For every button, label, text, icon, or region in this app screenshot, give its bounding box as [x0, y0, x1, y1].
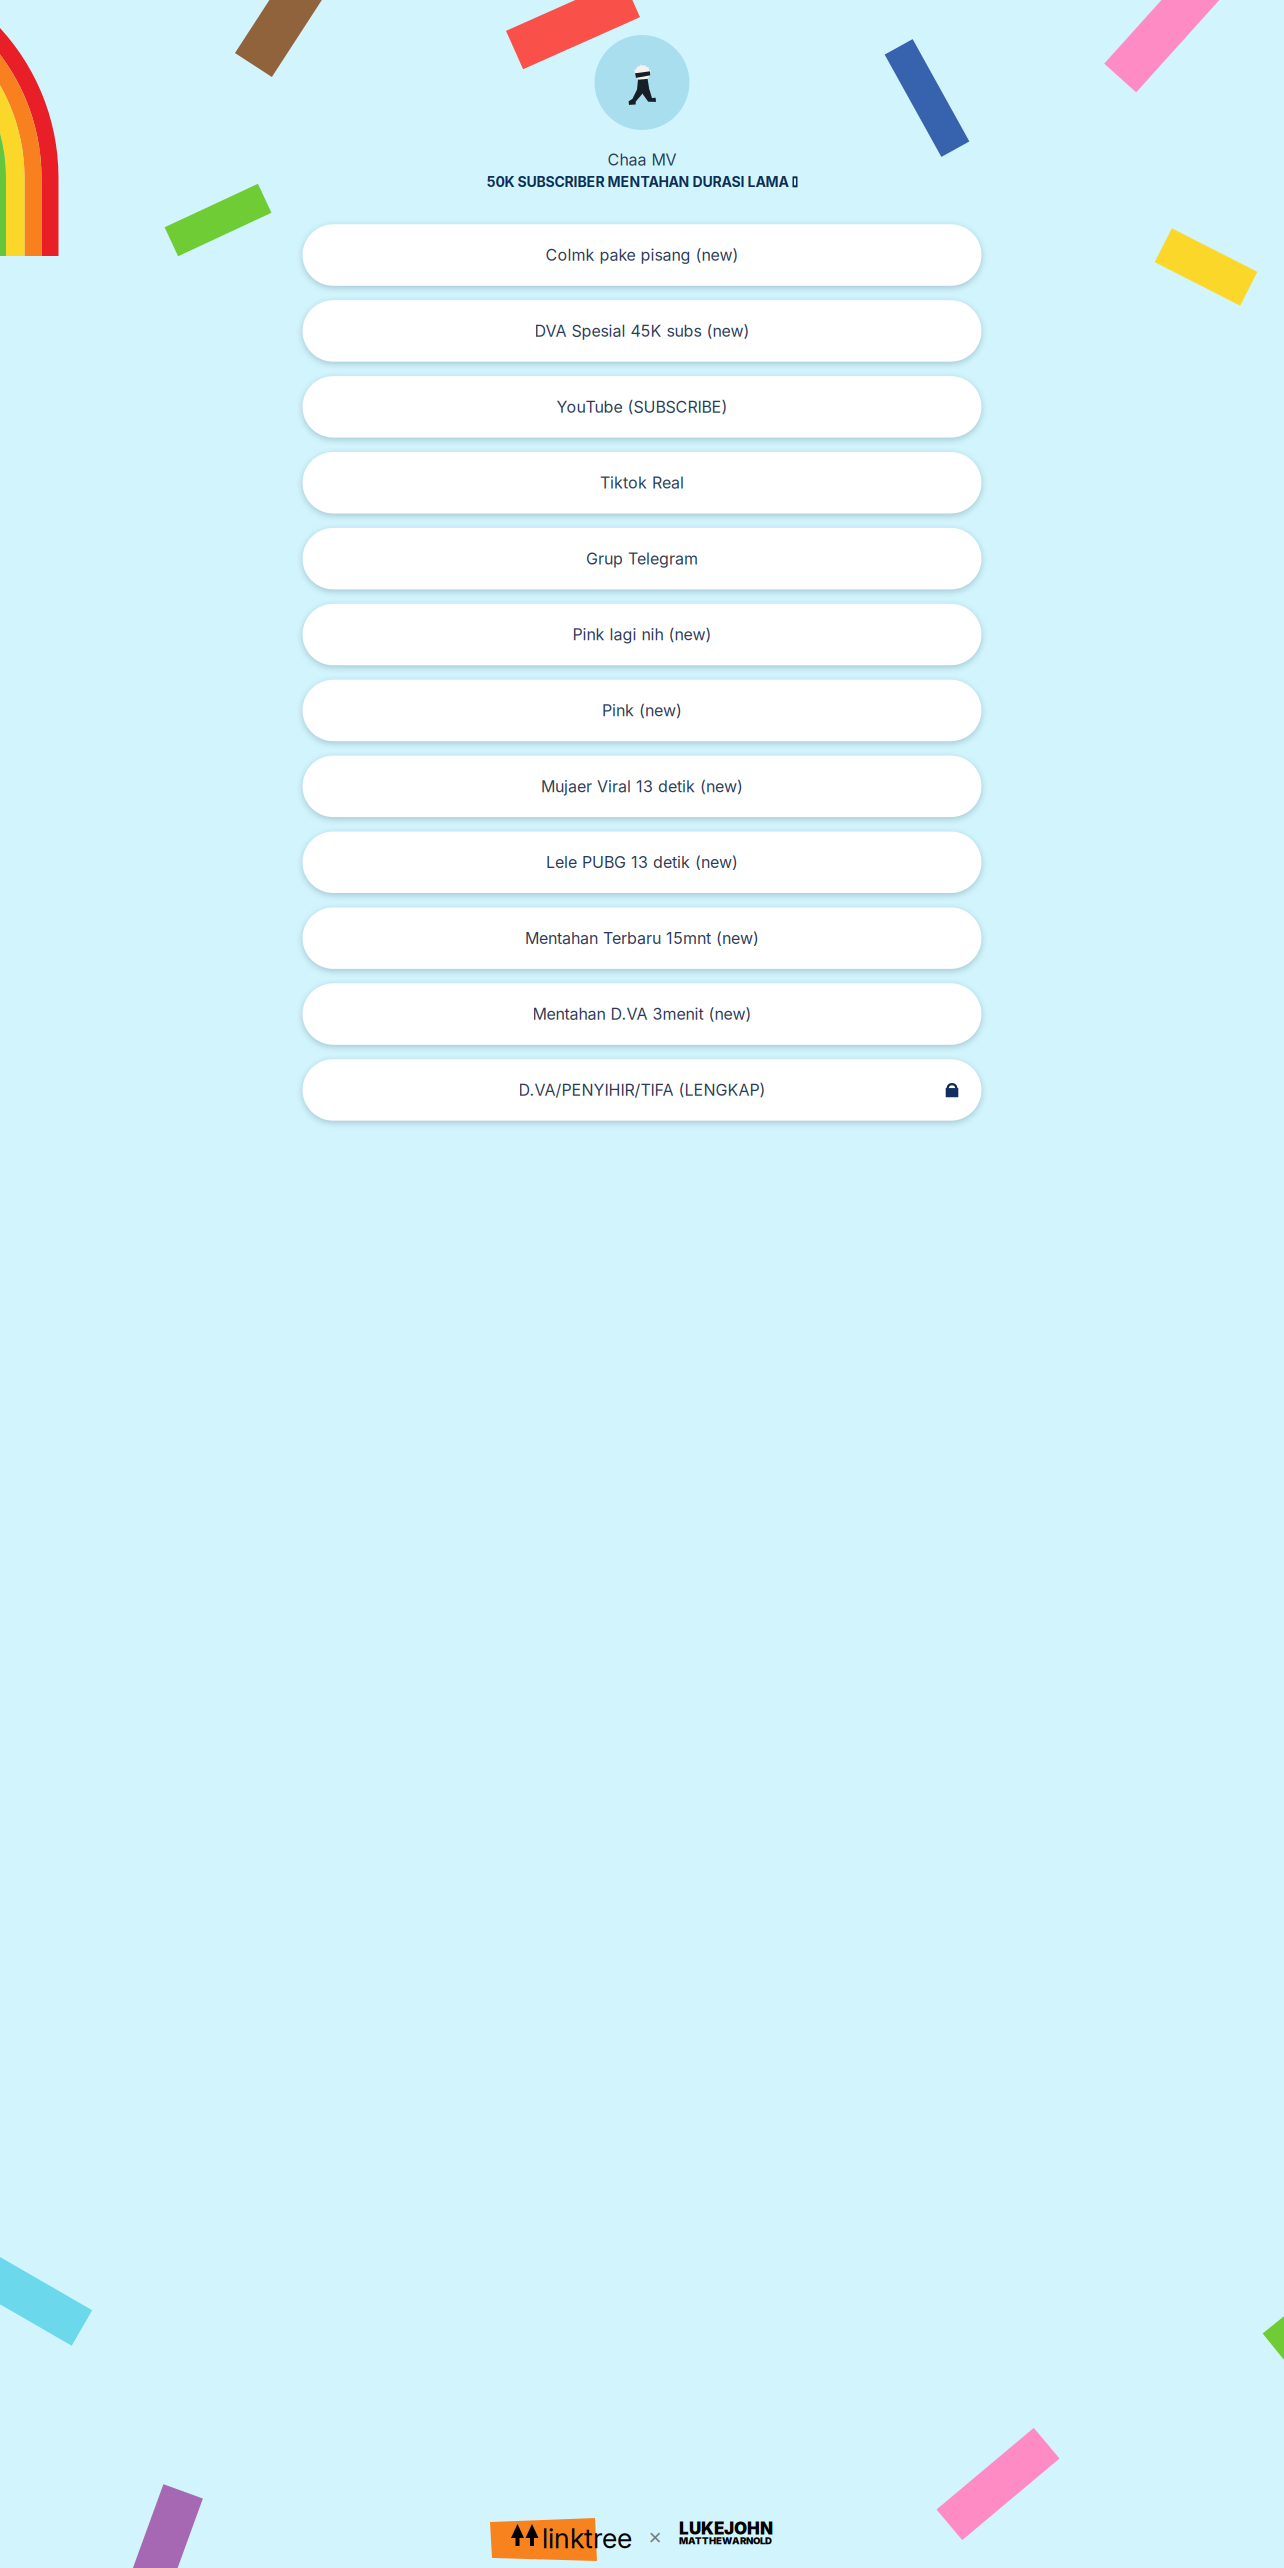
button[interactable]: Pink lagi nih (new) — [302, 604, 981, 665]
button[interactable]: YouTube (SUBSCRIBE) — [302, 376, 981, 438]
staticText: 50K SUBSCRIBER MENTAHAN DURASI LAMA — [486, 173, 788, 190]
staticText: Colmk pake pisang (new) — [545, 245, 738, 265]
button[interactable]: Pink (new) — [302, 680, 981, 741]
staticText: YouTube (SUBSCRIBE) — [556, 397, 727, 417]
staticText: DVA Spesial 45K subs (new) — [534, 321, 749, 341]
staticText: linktree — [542, 2522, 632, 2555]
staticText: LUKEJOHN — [679, 2518, 773, 2539]
staticText: D.VA/PENYIHIR/TIFA (LENGKAP) — [518, 1080, 765, 1100]
staticText: Grup Telegram — [586, 549, 698, 568]
button[interactable]: Mujaer Viral 13 detik (new) — [302, 756, 981, 817]
staticText: Mentahan Terbaru 15mnt (new) — [525, 928, 759, 948]
staticText: Tiktok Real — [600, 473, 684, 492]
staticText: ✕ — [648, 2528, 662, 2548]
staticText: Pink lagi nih (new) — [572, 625, 711, 644]
staticText: Mujaer Viral 13 detik (new) — [541, 777, 743, 796]
button[interactable]: Lele PUBG 13 detik (new) — [302, 831, 981, 893]
staticText: Chaa MV — [607, 150, 676, 169]
button[interactable]: Mentahan Terbaru 15mnt (new) — [302, 907, 981, 969]
staticText: Mentahan D.VA 3menit (new) — [532, 1004, 751, 1024]
staticText: Pink (new) — [602, 701, 682, 720]
staticText: Lele PUBG 13 detik (new) — [546, 853, 738, 872]
button[interactable]: D.VA/PENYIHIR/TIFA (LENGKAP) — [302, 1059, 981, 1121]
button[interactable]: Colmk pake pisang (new) — [302, 224, 981, 286]
button[interactable]: Tiktok Real — [302, 452, 981, 513]
staticText: MATTHEWARNOLD — [679, 2535, 772, 2547]
button[interactable]: DVA Spesial 45K subs (new) — [302, 300, 981, 362]
button[interactable]: Mentahan D.VA 3menit (new) — [302, 983, 981, 1045]
button[interactable]: Grup Telegram — [302, 528, 981, 589]
